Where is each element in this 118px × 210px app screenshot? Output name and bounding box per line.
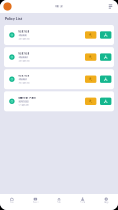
staticText: 9876019392	[18, 100, 28, 103]
button[interactable]: View policy	[85, 31, 96, 39]
button[interactable]: Share policy	[100, 53, 111, 61]
button[interactable]: Report	[24, 194, 47, 210]
button[interactable]: Mahesh Patel	[4, 91, 114, 111]
staticText: Report	[33, 201, 38, 203]
button[interactable]: Profile	[71, 194, 94, 210]
staticText: test test	[18, 52, 29, 55]
button[interactable]: Policy	[47, 194, 71, 210]
button[interactable]: test test	[4, 47, 114, 67]
button[interactable]: Account	[0, 1, 15, 12]
button[interactable]: View policy	[85, 75, 96, 83]
staticText: 17 days left	[18, 104, 29, 106]
staticText: 339 days left	[18, 60, 30, 62]
button[interactable]: Share policy	[100, 31, 111, 39]
staticText: Profile	[80, 201, 85, 203]
button[interactable]: Share policy	[100, 75, 111, 83]
button[interactable]: test test	[4, 25, 114, 45]
staticText: Policy	[57, 201, 61, 203]
button[interactable]: Menu	[103, 1, 118, 12]
staticText: Policy List	[5, 17, 22, 21]
staticText: test test	[18, 74, 29, 77]
button[interactable]: Settings	[94, 194, 118, 210]
staticText: 44564664	[18, 78, 26, 81]
staticText: 339 days left	[18, 38, 30, 40]
staticText: Settings	[104, 201, 109, 203]
staticText: Mahesh Patel	[18, 96, 36, 99]
button[interactable]: View policy	[85, 98, 96, 105]
staticText: test test	[18, 30, 29, 33]
staticText: 445646464	[18, 56, 27, 59]
button[interactable]: Home	[0, 194, 24, 210]
button[interactable]: View policy	[85, 53, 96, 61]
staticText: Home	[10, 201, 14, 203]
button[interactable]: Share policy	[100, 98, 111, 105]
staticText: 44564646	[18, 34, 26, 37]
button[interactable]: test test	[4, 69, 114, 89]
staticText: 342 days left	[18, 82, 30, 84]
staticText: Policy List	[55, 5, 63, 8]
